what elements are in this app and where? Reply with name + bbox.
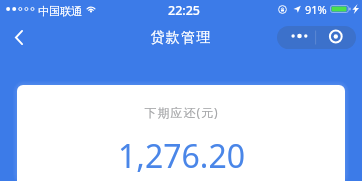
staticText: 贷款管理 bbox=[150, 29, 212, 47]
staticText: 1,276.20 bbox=[118, 134, 245, 178]
button[interactable]: Close mini program bbox=[316, 26, 356, 49]
button[interactable]: Back bbox=[2, 20, 36, 54]
button[interactable]: 下期应还(元) bbox=[17, 85, 345, 181]
staticText: 22:25 bbox=[168, 2, 201, 19]
staticText: 下期应还(元) bbox=[144, 104, 219, 120]
staticText: 中国联通 bbox=[38, 4, 82, 18]
staticText: 91% bbox=[305, 2, 327, 17]
button[interactable]: More options bbox=[277, 26, 316, 49]
